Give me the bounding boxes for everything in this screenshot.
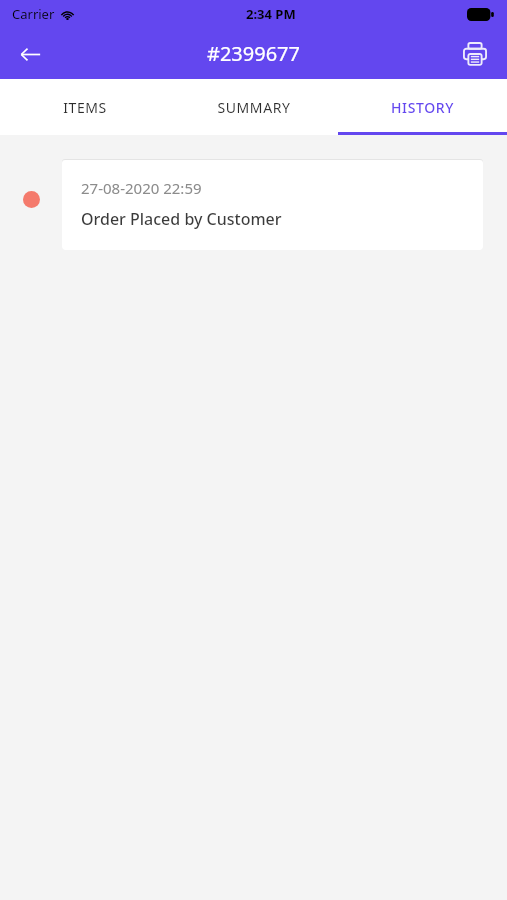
staticText: SUMMARY bbox=[217, 98, 291, 117]
staticText: #2399677 bbox=[207, 40, 300, 67]
staticText: Carrier bbox=[12, 5, 55, 23]
button[interactable]: ITEMS bbox=[0, 79, 169, 135]
staticText: 2:34 PM bbox=[246, 5, 296, 23]
button[interactable]: 27-08-2020 22:59 bbox=[62, 160, 483, 250]
button[interactable]: Print bbox=[453, 32, 497, 76]
button[interactable]: Back bbox=[8, 32, 52, 76]
staticText: 27-08-2020 22:59 bbox=[81, 178, 202, 198]
staticText: Order Placed by Customer bbox=[81, 208, 282, 230]
button[interactable]: SUMMARY bbox=[169, 79, 338, 135]
staticText: HISTORY bbox=[391, 98, 454, 117]
staticText: ITEMS bbox=[63, 98, 107, 117]
button[interactable]: HISTORY bbox=[338, 79, 507, 135]
